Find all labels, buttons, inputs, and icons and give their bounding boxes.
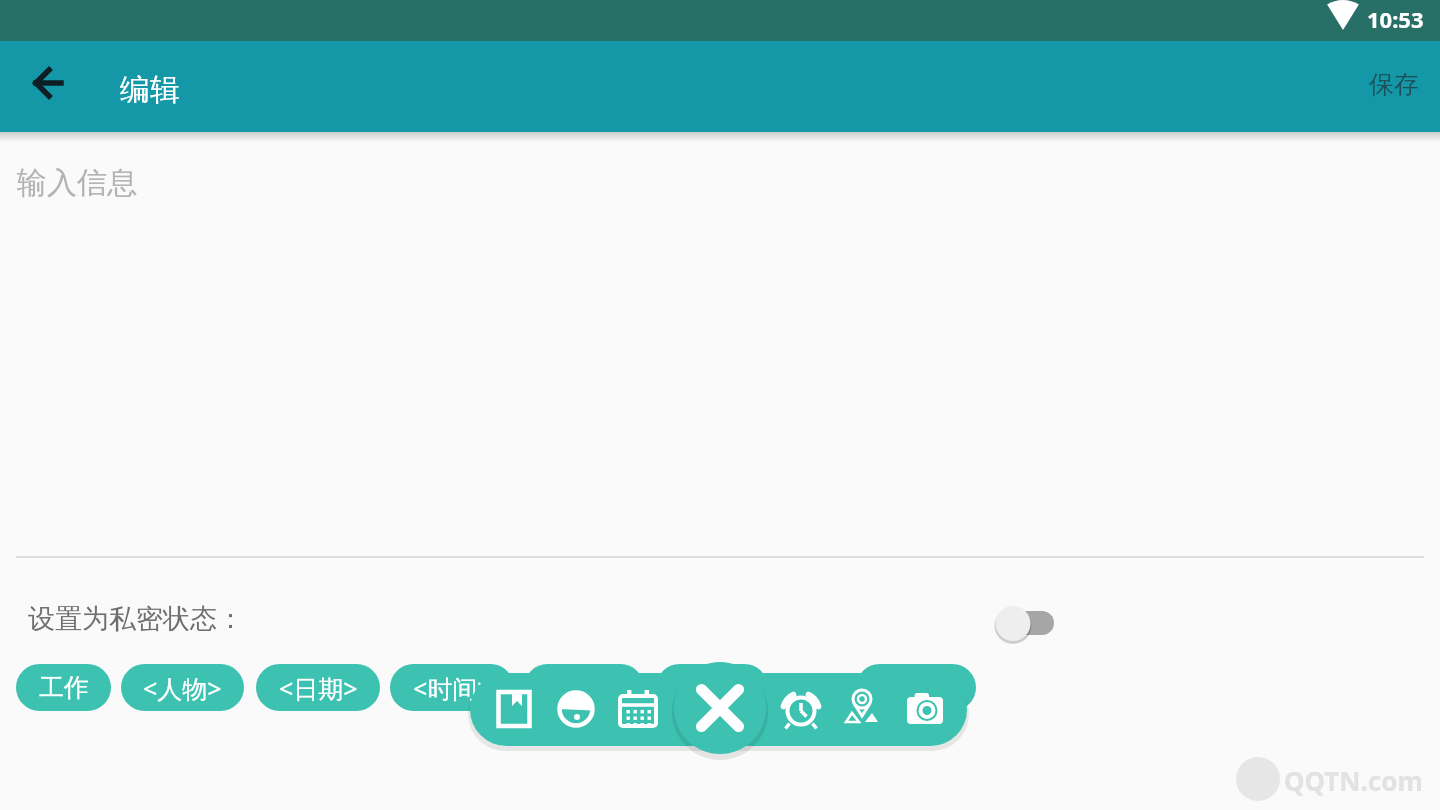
button[interactable] xyxy=(610,681,666,737)
button[interactable] xyxy=(548,681,604,737)
staticText: 编辑 xyxy=(120,71,180,109)
button[interactable]: 保存 xyxy=(1348,39,1440,130)
button[interactable] xyxy=(486,681,542,737)
staticText: 保存 xyxy=(1369,69,1419,100)
button[interactable] xyxy=(985,595,1065,651)
button[interactable]: 工作 xyxy=(16,664,111,711)
button[interactable] xyxy=(897,681,953,737)
button[interactable]: <人物> xyxy=(121,664,244,711)
staticText: 输入信息 xyxy=(17,164,137,202)
staticText: 设置为私密状态： xyxy=(28,602,244,636)
staticText: 10:53 xyxy=(1367,4,1424,34)
staticText: QQTN.com xyxy=(1284,763,1423,798)
button[interactable]: <备注> xyxy=(856,664,976,711)
button[interactable] xyxy=(20,55,76,111)
staticText: <地点> xyxy=(545,671,624,705)
staticText: <日期> xyxy=(279,671,358,705)
button[interactable]: <事件> xyxy=(656,664,768,711)
staticText: 工作 xyxy=(39,672,89,703)
button[interactable]: <时间> xyxy=(390,664,514,711)
button[interactable] xyxy=(674,662,766,754)
button[interactable] xyxy=(834,681,890,737)
staticText: <事件> xyxy=(673,671,752,705)
button[interactable]: <日期> xyxy=(256,664,380,711)
button[interactable] xyxy=(773,681,829,737)
staticText: <备注> xyxy=(877,671,956,705)
staticText: <时间> xyxy=(413,671,492,705)
staticText: <人物> xyxy=(143,671,222,705)
button[interactable]: <地点> xyxy=(524,664,644,711)
